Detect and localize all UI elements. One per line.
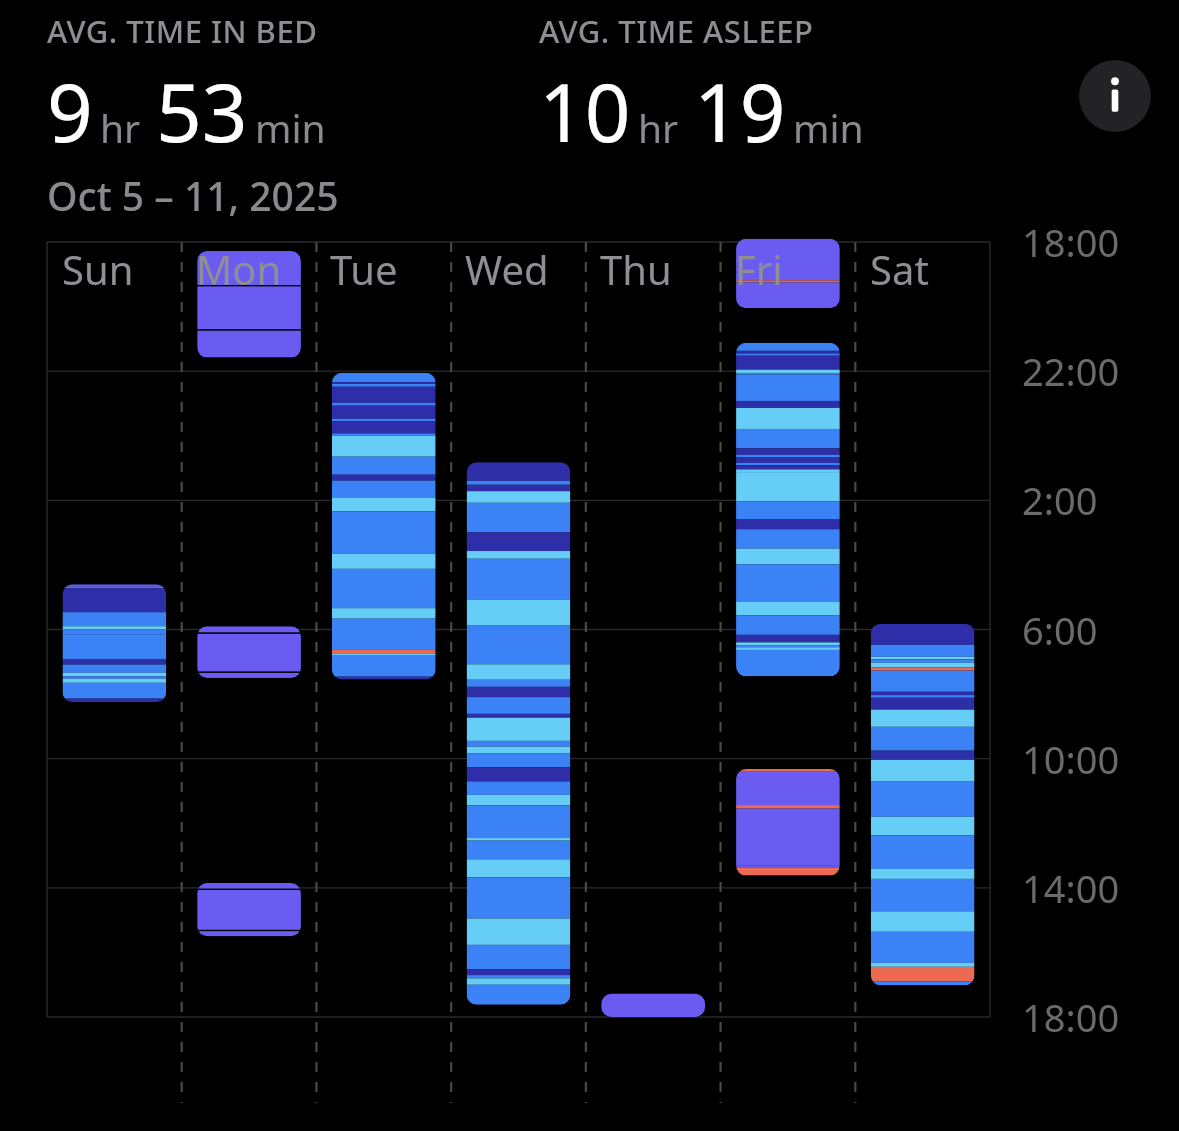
button[interactable]: Tue <box>315 242 450 1107</box>
staticText: AVG. TIME IN BED <box>47 10 318 52</box>
staticText: 14:00 <box>1022 862 1120 914</box>
staticText: min <box>793 101 864 154</box>
staticText: 10 <box>539 56 631 165</box>
staticText: Mon <box>196 242 282 296</box>
staticText: 2:00 <box>1022 474 1098 526</box>
staticText: Fri <box>735 242 783 296</box>
button[interactable]: Wed <box>450 242 585 1107</box>
staticText: Oct 5 – 11, 2025 <box>47 169 339 222</box>
staticText: 10:00 <box>1022 733 1120 785</box>
staticText: min <box>255 101 326 154</box>
staticText: 6:00 <box>1022 604 1098 656</box>
staticText: AVG. TIME ASLEEP <box>539 10 814 52</box>
staticText: 18:00 <box>1022 991 1120 1043</box>
staticText: Wed <box>465 242 549 296</box>
staticText: 19 <box>694 56 786 165</box>
button[interactable]: Sat <box>855 242 990 1107</box>
staticText: 9 <box>47 56 93 165</box>
staticText: hr <box>100 101 141 154</box>
staticText: hr <box>638 101 679 154</box>
staticText: Tue <box>330 242 398 296</box>
button[interactable]: Mon <box>181 242 315 1107</box>
staticText: 22:00 <box>1022 345 1120 397</box>
staticText: Sat <box>870 242 929 296</box>
staticText: Thu <box>600 242 672 296</box>
staticText: 18:00 <box>1022 216 1120 268</box>
staticText: Sun <box>62 242 134 296</box>
button[interactable]: Information <box>1079 60 1151 132</box>
button[interactable]: Sun <box>47 242 181 1107</box>
button[interactable]: Fri <box>720 242 855 1107</box>
staticText: 53 <box>156 56 248 165</box>
button[interactable]: Thu <box>585 242 720 1107</box>
